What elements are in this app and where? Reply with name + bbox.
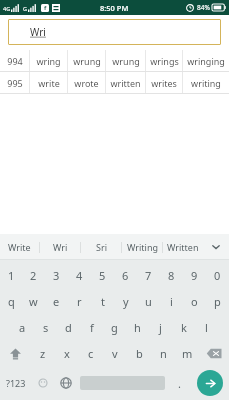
button[interactable]: y (114, 288, 137, 314)
staticText: g (111, 320, 118, 335)
staticText: a (19, 320, 26, 335)
staticText: f (90, 320, 94, 335)
staticText: x (64, 346, 70, 361)
staticText: writes (151, 77, 177, 89)
button[interactable]: g (103, 314, 126, 340)
staticText: f (44, 4, 47, 12)
button[interactable]: Wri (8, 19, 221, 45)
button[interactable]: p (206, 288, 229, 314)
button[interactable]: 1 (0, 262, 22, 288)
button[interactable]: l (195, 314, 218, 340)
staticText: wrung (73, 55, 101, 67)
staticText: Write (8, 241, 31, 253)
staticText: j (159, 320, 162, 335)
button[interactable]: s (34, 314, 57, 340)
staticText: 0 (214, 268, 221, 283)
staticText: 994 (7, 55, 23, 67)
button[interactable]: 3 (45, 262, 68, 288)
staticText: Writing (127, 241, 158, 253)
staticText: n (160, 346, 167, 361)
button[interactable]: x (55, 340, 79, 366)
staticText: 3 (53, 268, 60, 283)
staticText: w (29, 294, 38, 309)
staticText: d (65, 320, 72, 335)
button[interactable]: i (160, 288, 183, 314)
staticText: o (191, 294, 198, 309)
button[interactable]: 9 (183, 262, 206, 288)
button[interactable]: . (168, 366, 191, 400)
button[interactable]: 995 (0, 72, 229, 93)
staticText: Written (167, 241, 199, 253)
staticText: 7 (145, 268, 152, 283)
staticText: 4G (3, 5, 11, 12)
button[interactable]: Shift (0, 340, 31, 366)
button[interactable]: Delete (199, 340, 229, 366)
button[interactable]: 0 (206, 262, 229, 288)
staticText: 8 (168, 268, 175, 283)
staticText: G (23, 5, 28, 12)
button[interactable]: ?123 (0, 366, 32, 400)
button[interactable]: 2 (22, 262, 45, 288)
staticText: m (182, 346, 193, 361)
staticText: wrote (74, 77, 99, 89)
button[interactable]: Written (163, 234, 203, 260)
staticText: u (145, 294, 152, 309)
button[interactable]: 6 (114, 262, 137, 288)
staticText: c (88, 346, 94, 361)
staticText: writing (191, 77, 221, 89)
staticText: 9 (191, 268, 198, 283)
button[interactable]: Sri (81, 234, 121, 260)
button[interactable]: Wri (40, 234, 80, 260)
button[interactable]: r (68, 288, 91, 314)
button[interactable]: 8 (160, 262, 183, 288)
button[interactable]: Change language (54, 366, 77, 400)
staticText: z (40, 346, 46, 361)
staticText: 995 (7, 77, 23, 89)
button[interactable]: b (127, 340, 151, 366)
button[interactable]: w (22, 288, 45, 314)
button[interactable]: c (79, 340, 103, 366)
staticText: wring (36, 55, 61, 67)
button[interactable]: z (31, 340, 55, 366)
staticText: wringing (187, 55, 225, 67)
button[interactable]: d (57, 314, 80, 340)
button[interactable]: k (172, 314, 195, 340)
button[interactable]: q (0, 288, 22, 314)
staticText: 6 (122, 268, 129, 283)
staticText: 2 (30, 268, 37, 283)
staticText: k (181, 320, 187, 335)
staticText: wrung (112, 55, 140, 67)
staticText: Wri (53, 241, 68, 253)
button[interactable]: 7 (137, 262, 160, 288)
button[interactable]: h (126, 314, 149, 340)
button[interactable]: 4 (68, 262, 91, 288)
button[interactable]: Enter (197, 370, 223, 396)
button[interactable]: f (80, 314, 103, 340)
button[interactable]: e (45, 288, 68, 314)
button[interactable]: v (103, 340, 127, 366)
button[interactable]: n (151, 340, 175, 366)
button[interactable]: Writing (122, 234, 162, 260)
staticText: b (136, 346, 143, 361)
button[interactable]: j (149, 314, 172, 340)
button[interactable]: Emoji (32, 366, 54, 400)
staticText: Wri (30, 25, 46, 39)
staticText: 5 (99, 268, 106, 283)
button[interactable]: a (11, 314, 34, 340)
button[interactable]: 994 (0, 50, 229, 71)
staticText: 84% (197, 3, 210, 12)
staticText: 8:50 PM (100, 3, 129, 13)
button[interactable]: Write (0, 234, 39, 260)
staticText: write (38, 77, 60, 89)
staticText: y (123, 294, 129, 309)
staticText: Sri (96, 241, 107, 253)
staticText: wrings (150, 55, 179, 67)
button[interactable]: u (137, 288, 160, 314)
staticText: p (214, 294, 221, 309)
button[interactable]: o (183, 288, 206, 314)
button[interactable]: More suggestions (203, 234, 229, 260)
button[interactable]: 5 (91, 262, 114, 288)
button[interactable]: t (91, 288, 114, 314)
button[interactable]: m (175, 340, 199, 366)
